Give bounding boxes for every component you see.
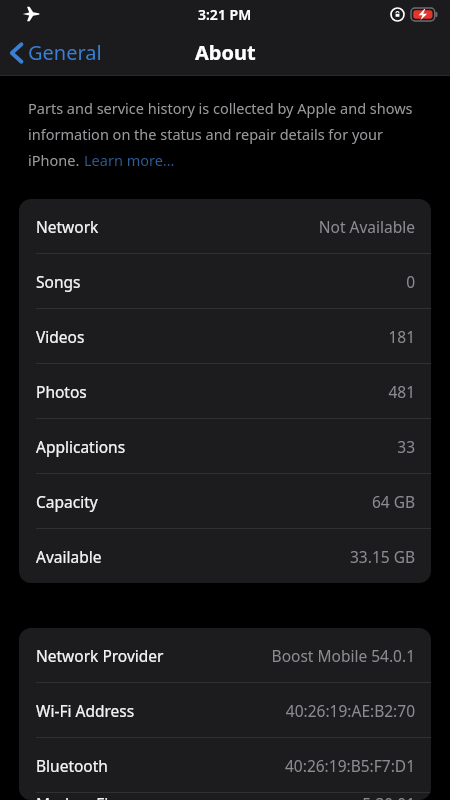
button[interactable]: Wi-Fi Address [19, 683, 431, 737]
staticText: Boost Mobile 54.0.1 [271, 645, 415, 666]
staticText: information on the status and repair det… [28, 124, 384, 144]
staticText: Photos [36, 381, 87, 402]
staticText: General [28, 39, 102, 66]
staticText: Network [36, 216, 99, 237]
staticText: Wi-Fi Address [36, 700, 135, 721]
other: Airplane mode [22, 5, 40, 23]
button[interactable]: Bluetooth [19, 738, 431, 792]
button[interactable]: General [0, 33, 112, 72]
button[interactable]: Applications [19, 419, 431, 473]
button[interactable]: Learn more... [84, 150, 175, 170]
staticText: 40:26:19:B5:F7:D1 [285, 755, 415, 776]
staticText: Parts and service history is collected b… [28, 98, 413, 118]
staticText: 64 GB [371, 491, 415, 512]
staticText: Bluetooth [36, 755, 108, 776]
staticText: 481 [388, 381, 415, 402]
button[interactable]: Network Provider [19, 628, 431, 682]
staticText: Modem Firmware [36, 793, 165, 800]
staticText: 181 [388, 326, 415, 347]
button[interactable]: Modem Firmware [19, 793, 431, 800]
staticText: About [195, 39, 256, 66]
staticText: 40:26:19:AE:B2:70 [285, 700, 415, 721]
button[interactable]: Network [19, 199, 431, 253]
button[interactable]: Videos [19, 309, 431, 363]
button[interactable]: Available [19, 529, 431, 583]
staticText: 0 [406, 271, 415, 292]
staticText: Videos [36, 326, 85, 347]
staticText: Songs [36, 271, 81, 292]
staticText: Learn more... [84, 150, 175, 170]
staticText: Applications [36, 436, 126, 457]
staticText: 33.15 GB [349, 546, 415, 567]
button[interactable]: Capacity [19, 474, 431, 528]
staticText: 33 [397, 436, 415, 457]
staticText: Network Provider [36, 645, 164, 666]
other: Battery charging, low [411, 8, 438, 21]
staticText: Available [36, 546, 102, 567]
button[interactable]: Songs [19, 254, 431, 308]
staticText: 3:21 PM [198, 5, 252, 24]
button[interactable]: Photos [19, 364, 431, 418]
staticText: iPhone. [28, 150, 84, 170]
staticText: Not Available [318, 216, 415, 237]
staticText: Capacity [36, 491, 98, 512]
staticText: 5.30.01 [362, 793, 415, 800]
